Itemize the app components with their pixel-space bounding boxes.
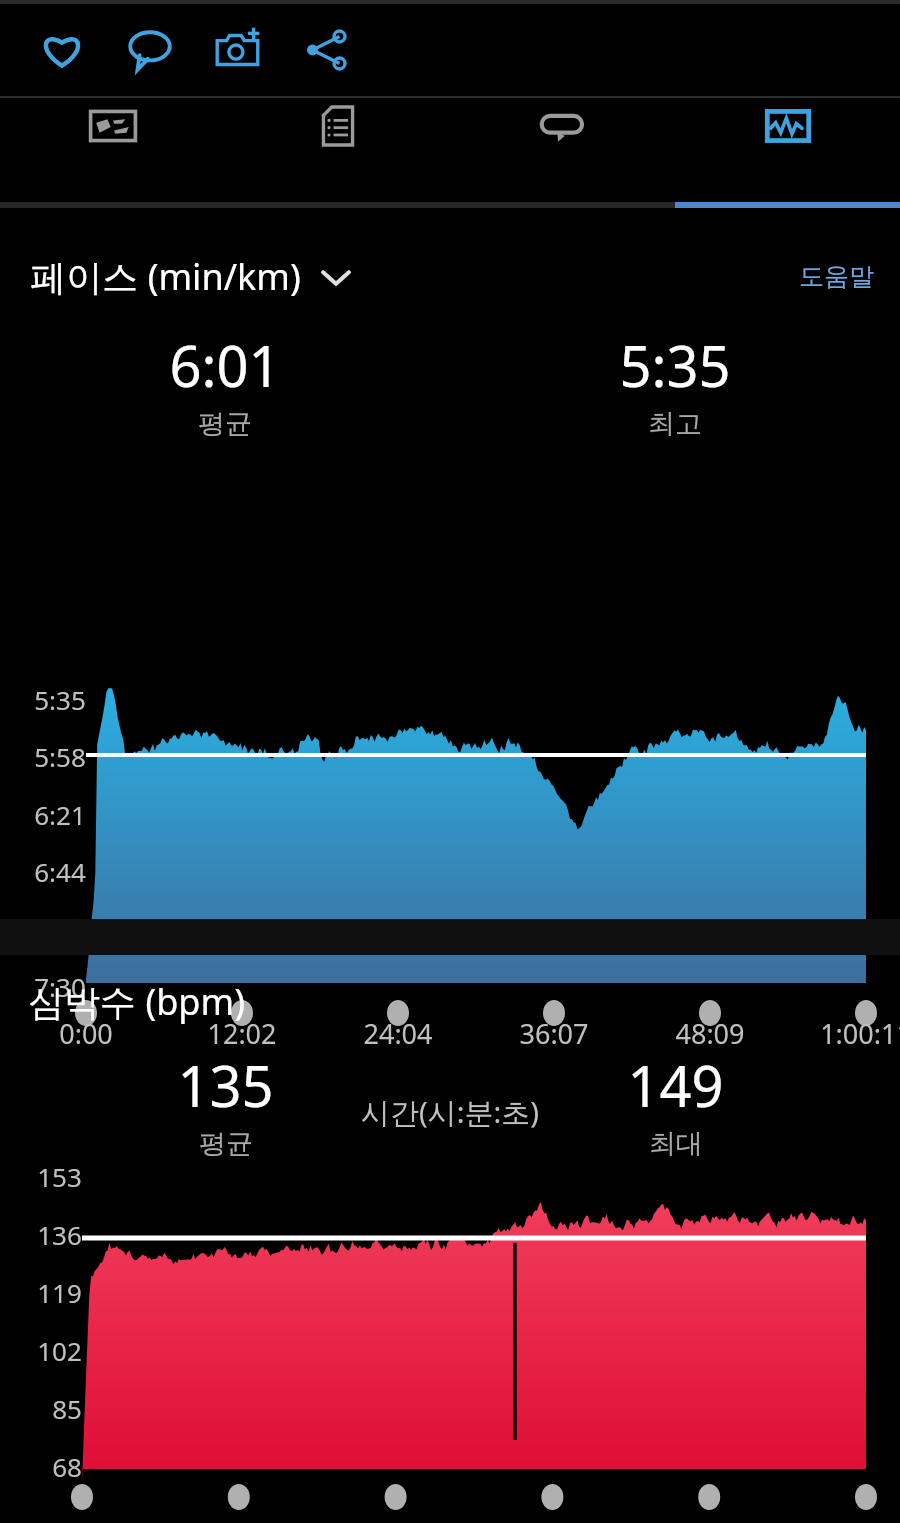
staticText: 7:30 xyxy=(34,969,86,1004)
staticText: 페이스 (min/km) xyxy=(30,252,301,301)
staticText: 평균 xyxy=(199,1127,253,1161)
button[interactable]: Map xyxy=(0,98,225,154)
staticText: 6:01 xyxy=(169,327,281,403)
button[interactable]: Add photo xyxy=(204,16,272,84)
staticText: 153 xyxy=(37,1159,82,1194)
staticText: 7:07 xyxy=(34,912,86,947)
staticText: 12:02 xyxy=(207,1015,277,1052)
button[interactable]: Share xyxy=(292,16,360,84)
staticText: 24:04 xyxy=(363,1015,433,1052)
staticText: 119 xyxy=(37,1275,82,1310)
button[interactable]: Details xyxy=(225,98,450,154)
button[interactable]: 페이스 (min/km) xyxy=(30,252,353,301)
staticText: 68 xyxy=(52,1449,82,1484)
staticText: 도움말 xyxy=(799,261,874,292)
button[interactable]: Laps xyxy=(450,98,675,154)
staticText: 6:21 xyxy=(34,797,86,832)
staticText: 102 xyxy=(37,1333,82,1368)
staticText: 85 xyxy=(52,1391,82,1426)
staticText: 48:09 xyxy=(675,1015,745,1052)
staticText: 6:44 xyxy=(34,854,86,889)
staticText: 심박수 (bpm) xyxy=(28,977,245,1026)
button[interactable]: Comment xyxy=(116,16,184,84)
staticText: 5:35 xyxy=(619,327,731,403)
staticText: 0:00 xyxy=(59,1015,113,1052)
button[interactable]: Graphs xyxy=(675,98,900,154)
staticText: 최고 xyxy=(648,407,702,441)
button[interactable]: Like xyxy=(28,16,96,84)
staticText: 149 xyxy=(627,1047,724,1123)
staticText: 1:00:11 xyxy=(820,1015,900,1052)
staticText: 5:58 xyxy=(34,739,86,774)
staticText: 136 xyxy=(37,1217,82,1252)
staticText: 최대 xyxy=(649,1127,703,1161)
button[interactable]: 도움말 xyxy=(799,261,874,292)
staticText: 평균 xyxy=(198,407,252,441)
staticText: 시간(시:분:초) xyxy=(361,1092,539,1132)
staticText: 135 xyxy=(177,1047,274,1123)
staticText: 36:07 xyxy=(519,1015,589,1052)
staticText: 5:35 xyxy=(34,682,86,717)
